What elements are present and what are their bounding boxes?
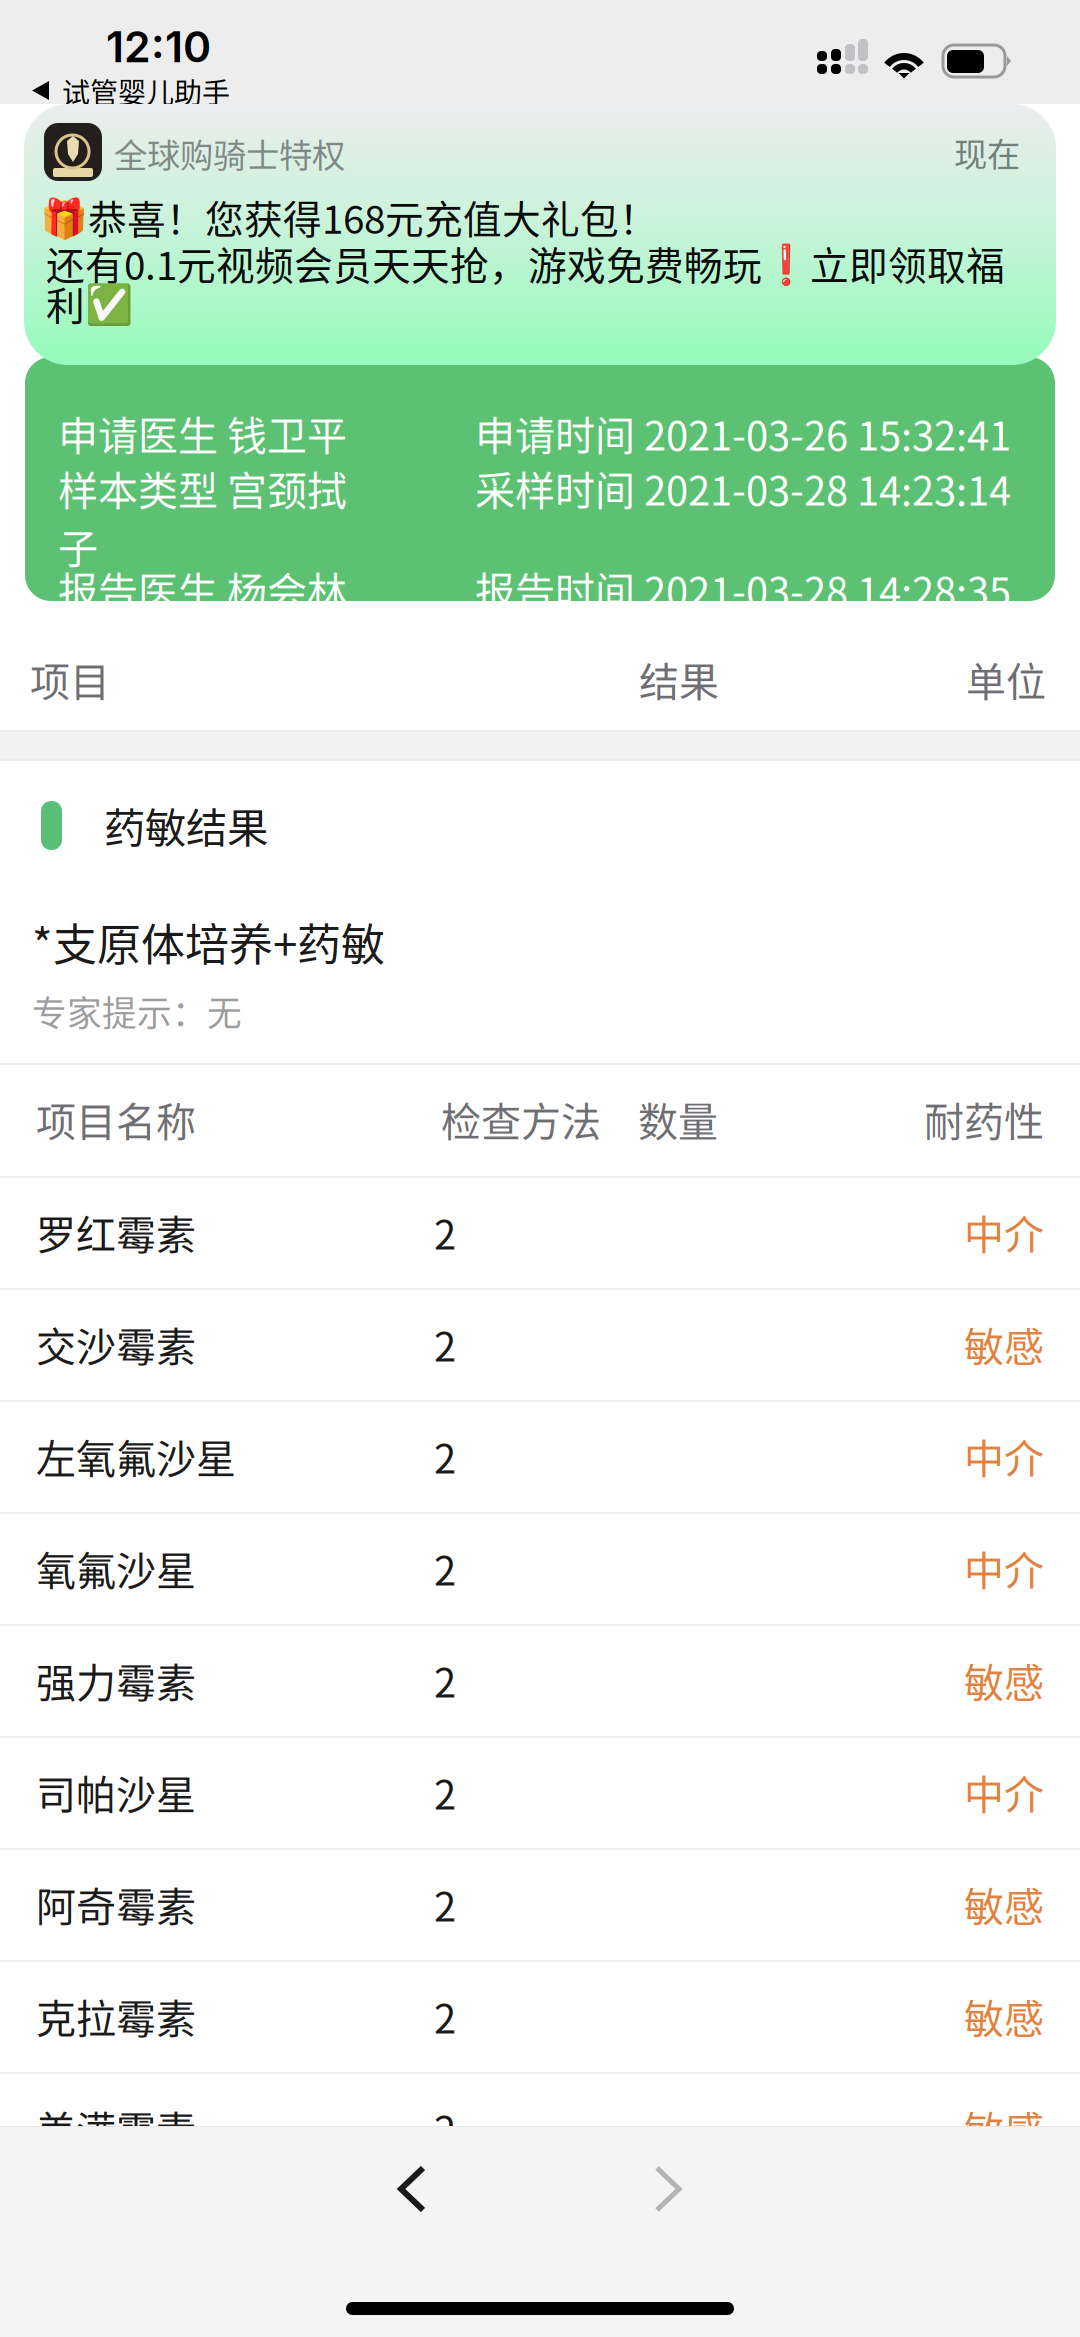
staticText: 检查方法 <box>441 1090 601 1148</box>
staticText: 🎁恭喜！您获得168元充值大礼包！ <box>40 189 658 245</box>
button[interactable]: 交沙霉素 <box>0 1290 1080 1402</box>
staticText: 试管婴儿助手 <box>62 71 230 111</box>
staticText: 中介 <box>964 1763 1044 1821</box>
staticText: 报告时间 2021-03-28 14:28:35 <box>475 560 1011 618</box>
button[interactable]: 全球购骑士特权 <box>24 104 1056 365</box>
staticText: 2 <box>434 1203 456 1261</box>
staticText: 2 <box>434 1875 456 1933</box>
staticText: 项目名称 <box>36 1090 196 1148</box>
staticText: 项目 <box>30 650 110 708</box>
button[interactable]: 美满霉素 <box>0 2074 1080 2186</box>
button[interactable]: 左氧氟沙星 <box>0 1402 1080 1514</box>
staticText: 现在 <box>954 128 1020 176</box>
staticText: 2 <box>434 1427 456 1485</box>
staticText: 2 <box>434 1987 456 2045</box>
button[interactable]: 氧氟沙星 <box>0 1514 1080 1626</box>
staticText: 中介 <box>964 1427 1044 1485</box>
staticText: 中介 <box>964 1203 1044 1261</box>
staticText: 敏感 <box>964 1651 1044 1709</box>
staticText: 样本类型 宫颈拭子 <box>58 459 347 575</box>
staticText: 报告医生 杨会林 <box>58 560 347 618</box>
staticText: 敏感 <box>964 1987 1044 2045</box>
staticText: 专家提示：无 <box>32 986 242 1036</box>
staticText: 2 <box>434 1651 456 1709</box>
staticText: 单位 <box>966 650 1046 708</box>
button[interactable]: 罗红霉素 <box>0 1178 1080 1290</box>
staticText: 美满霉素 <box>36 2099 196 2157</box>
staticText: 左氧氟沙星 <box>36 1427 236 1485</box>
button[interactable]: 司帕沙星 <box>0 1738 1080 1850</box>
staticText: 申请时间 2021-03-26 15:32:41 <box>475 404 1011 462</box>
staticText: 中介 <box>964 1539 1044 1597</box>
staticText: 敏感 <box>964 1875 1044 1933</box>
staticText: 申请医生 钱卫平 <box>58 404 347 462</box>
button[interactable]: 强力霉素 <box>0 1626 1080 1738</box>
staticText: 2 <box>434 1763 456 1821</box>
staticText: 2 <box>434 1539 456 1597</box>
staticText: 敏感 <box>964 2099 1044 2157</box>
staticText: 耐药性 <box>924 1090 1044 1148</box>
button[interactable]: Forward <box>608 2134 728 2244</box>
staticText: 药敏结果 <box>104 795 268 855</box>
button[interactable]: 克拉霉素 <box>0 1962 1080 2074</box>
staticText: 敏感 <box>964 1315 1044 1373</box>
staticText: 结果 <box>639 650 719 708</box>
staticText: 采样时间 2021-03-28 14:23:14 <box>475 459 1011 517</box>
button[interactable]: Back <box>352 2134 472 2244</box>
staticText: 2 <box>434 1315 456 1373</box>
button[interactable]: 阿奇霉素 <box>0 1850 1080 1962</box>
staticText: 还有0.1元视频会员天天抢，游戏免费畅玩❗立即领取福利✅ <box>46 243 1005 324</box>
staticText: 12:10 <box>106 21 211 73</box>
staticText: 司帕沙星 <box>36 1763 196 1821</box>
staticText: 2 <box>434 2099 456 2157</box>
staticText: 克拉霉素 <box>36 1987 196 2045</box>
staticText: 氧氟沙星 <box>36 1539 196 1597</box>
staticText: *支原体培养+药敏 <box>32 910 385 974</box>
staticText: 交沙霉素 <box>36 1315 196 1373</box>
staticText: 阿奇霉素 <box>36 1875 196 1933</box>
staticText: 强力霉素 <box>36 1651 196 1709</box>
staticText: 全球购骑士特权 <box>114 129 345 177</box>
staticText: 罗红霉素 <box>36 1203 196 1261</box>
staticText: 数量 <box>638 1090 718 1148</box>
